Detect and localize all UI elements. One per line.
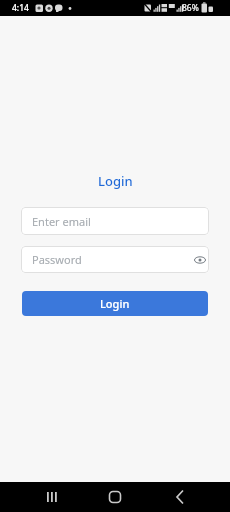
staticText: Enter email (32, 214, 91, 229)
staticText: Login (98, 172, 133, 190)
button[interactable]: Enter email (21, 207, 209, 235)
button[interactable] (38, 483, 66, 511)
staticText: 86% (182, 2, 199, 14)
button[interactable] (101, 483, 129, 511)
staticText: 4:14 (12, 2, 29, 14)
button[interactable] (166, 483, 194, 511)
button[interactable]: Login (22, 291, 208, 316)
button[interactable] (188, 248, 209, 272)
staticText: Password (32, 252, 82, 267)
button[interactable]: Password (21, 246, 209, 273)
staticText: Login (100, 296, 130, 311)
